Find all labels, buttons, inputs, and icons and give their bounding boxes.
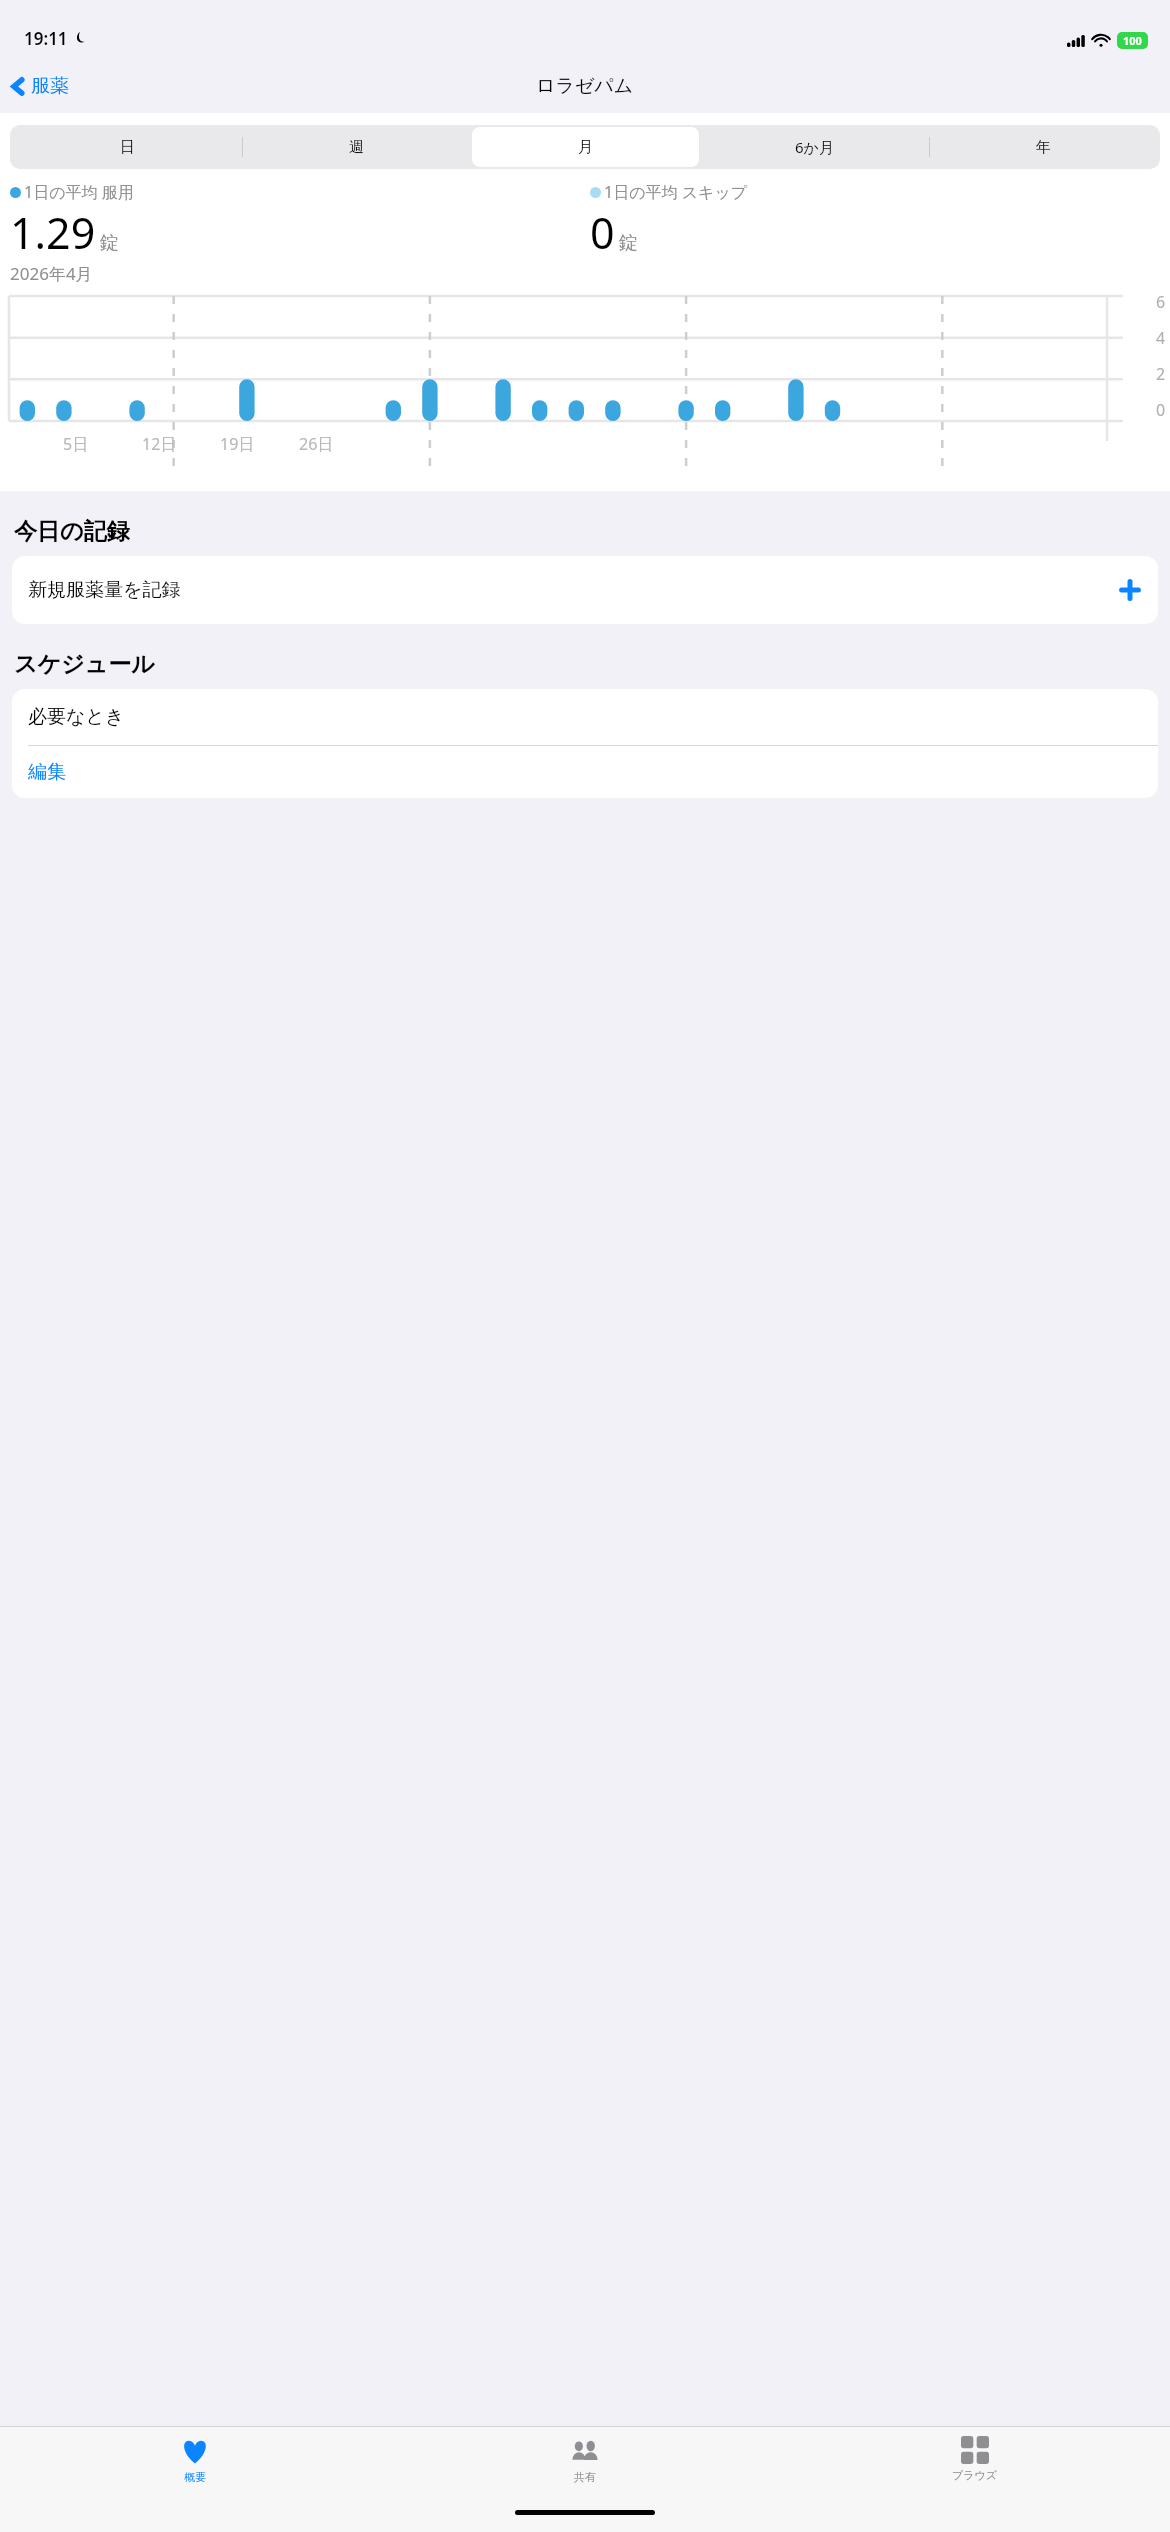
staticText: 0 [590, 203, 615, 262]
staticText: ロラゼパム [536, 74, 634, 98]
button[interactable]: 服薬 [4, 68, 79, 104]
staticText: 2026年4月 [10, 262, 93, 285]
button[interactable]: 月 [472, 127, 699, 167]
staticText: 必要なとき [28, 705, 125, 729]
staticText: 概要 [184, 2470, 206, 2484]
staticText: 錠 [100, 231, 119, 255]
button[interactable]: 共有 [390, 2427, 780, 2510]
staticText: 26日 [299, 433, 334, 455]
button[interactable]: 週 [243, 127, 470, 167]
button[interactable]: 新規服薬量を記録 [12, 556, 1158, 624]
staticText: 週 [349, 138, 364, 157]
staticText: 新規服薬量を記録 [28, 578, 181, 602]
staticText: 1日の平均 スキップ [604, 181, 748, 203]
staticText: 0 [1156, 399, 1166, 421]
button[interactable]: 編集 [12, 746, 1158, 798]
staticText: 錠 [619, 231, 638, 255]
other: Add dose [1118, 578, 1142, 602]
staticText: 12日 [142, 433, 177, 455]
staticText: 1.29 [10, 203, 96, 262]
staticText: スケジュール [14, 650, 155, 679]
staticText: 1日の平均 服用 [24, 181, 134, 203]
staticText: 今日の記録 [14, 517, 130, 546]
staticText: 5日 [63, 433, 89, 455]
staticText: 共有 [574, 2470, 596, 2484]
button[interactable]: 年 [930, 127, 1157, 167]
staticText: 編集 [28, 760, 66, 784]
staticText: 100 [1123, 33, 1142, 48]
staticText: 2 [1156, 363, 1166, 385]
button[interactable]: 6か月 [701, 127, 928, 167]
button[interactable]: 概要 [0, 2427, 390, 2510]
button[interactable]: 日 [13, 127, 241, 167]
staticText: 6 [1156, 291, 1166, 313]
staticText: 6か月 [795, 137, 834, 157]
staticText: ブラウズ [952, 2468, 998, 2482]
staticText: 19日 [220, 433, 255, 455]
staticText: 日 [120, 138, 135, 157]
staticText: 4 [1156, 327, 1166, 349]
staticText: 月 [578, 138, 593, 157]
staticText: 19:11 [24, 27, 68, 50]
staticText: 年 [1036, 138, 1051, 157]
staticText: 服薬 [31, 74, 69, 98]
button[interactable]: ブラウズ [780, 2427, 1170, 2510]
